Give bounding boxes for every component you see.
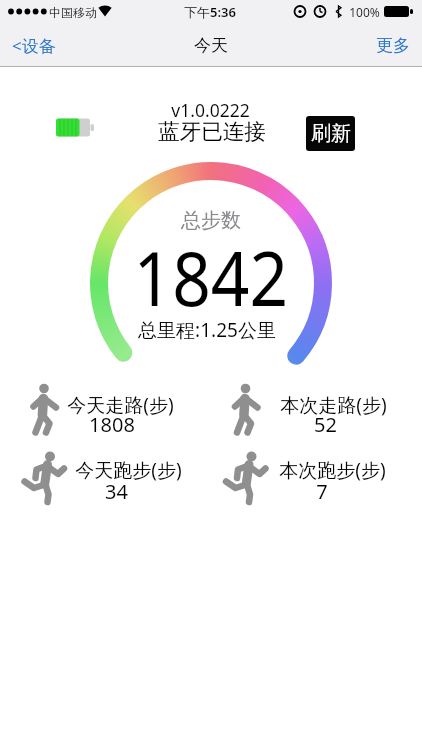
staticText: 蓝牙已连接 bbox=[158, 118, 266, 145]
staticText: 7 bbox=[316, 478, 328, 505]
staticText: 1808 bbox=[89, 411, 135, 438]
staticText: 100% bbox=[349, 4, 380, 20]
button[interactable]: <设备 bbox=[4, 29, 64, 61]
staticText: 总步数 bbox=[181, 208, 241, 233]
staticText: v1.0.0222 bbox=[171, 98, 250, 122]
staticText: 本次跑步(步) bbox=[279, 457, 386, 483]
staticText: 34 bbox=[105, 478, 128, 505]
staticText: 本次走路(步) bbox=[280, 392, 387, 418]
staticText: 刷新 bbox=[311, 121, 351, 146]
staticText: 中国移动 bbox=[49, 5, 97, 20]
staticText: 总里程:1.25公里 bbox=[138, 317, 276, 343]
button[interactable]: 更多 bbox=[368, 29, 418, 61]
staticText: 1842 bbox=[134, 226, 288, 328]
staticText: 今天跑步(步) bbox=[75, 457, 182, 483]
button[interactable]: 刷新 bbox=[306, 116, 355, 151]
staticText: <设备 bbox=[12, 34, 56, 57]
staticText: 52 bbox=[314, 411, 337, 438]
staticText: 今天走路(步) bbox=[67, 392, 174, 418]
staticText: 下午5:36 bbox=[184, 3, 236, 21]
staticText: 今天 bbox=[194, 35, 228, 56]
staticText: 更多 bbox=[376, 35, 410, 56]
